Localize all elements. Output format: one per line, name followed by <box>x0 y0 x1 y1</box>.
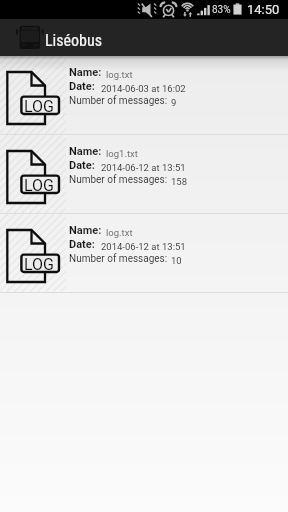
staticText: 2014-06-12 at 13:51 <box>101 162 186 173</box>
staticText: 2014-06-12 at 13:51 <box>101 241 186 252</box>
staticText: 10 <box>171 255 182 266</box>
staticText: 158 <box>171 176 188 187</box>
staticText: Liséobus <box>45 31 103 50</box>
staticText: 9 <box>171 97 177 108</box>
staticText: Date: <box>69 80 95 93</box>
staticText: LOG <box>24 97 55 116</box>
button[interactable]: Liséobus <box>0 19 288 56</box>
staticText: Date: <box>69 238 95 251</box>
staticText: log.txt <box>106 69 133 80</box>
staticText: Date: <box>69 159 95 172</box>
staticText: log.txt <box>106 227 133 238</box>
button[interactable]: LOG <box>0 135 288 213</box>
staticText: LOG <box>24 176 55 195</box>
staticText: log1.txt <box>106 148 138 159</box>
staticText: 83% <box>212 4 231 16</box>
staticText: Number of messages: <box>69 174 168 186</box>
staticText: Number of messages: <box>69 95 168 107</box>
staticText: Name: <box>69 145 102 158</box>
button[interactable]: LOG <box>0 214 288 292</box>
staticText: LOG <box>24 255 55 274</box>
button[interactable]: LOG <box>0 56 288 134</box>
staticText: 14:50 <box>247 2 280 17</box>
staticText: Name: <box>69 224 102 237</box>
staticText: Number of messages: <box>69 253 168 265</box>
staticText: Name: <box>69 66 102 79</box>
staticText: 2014-06-03 at 16:02 <box>101 83 186 94</box>
